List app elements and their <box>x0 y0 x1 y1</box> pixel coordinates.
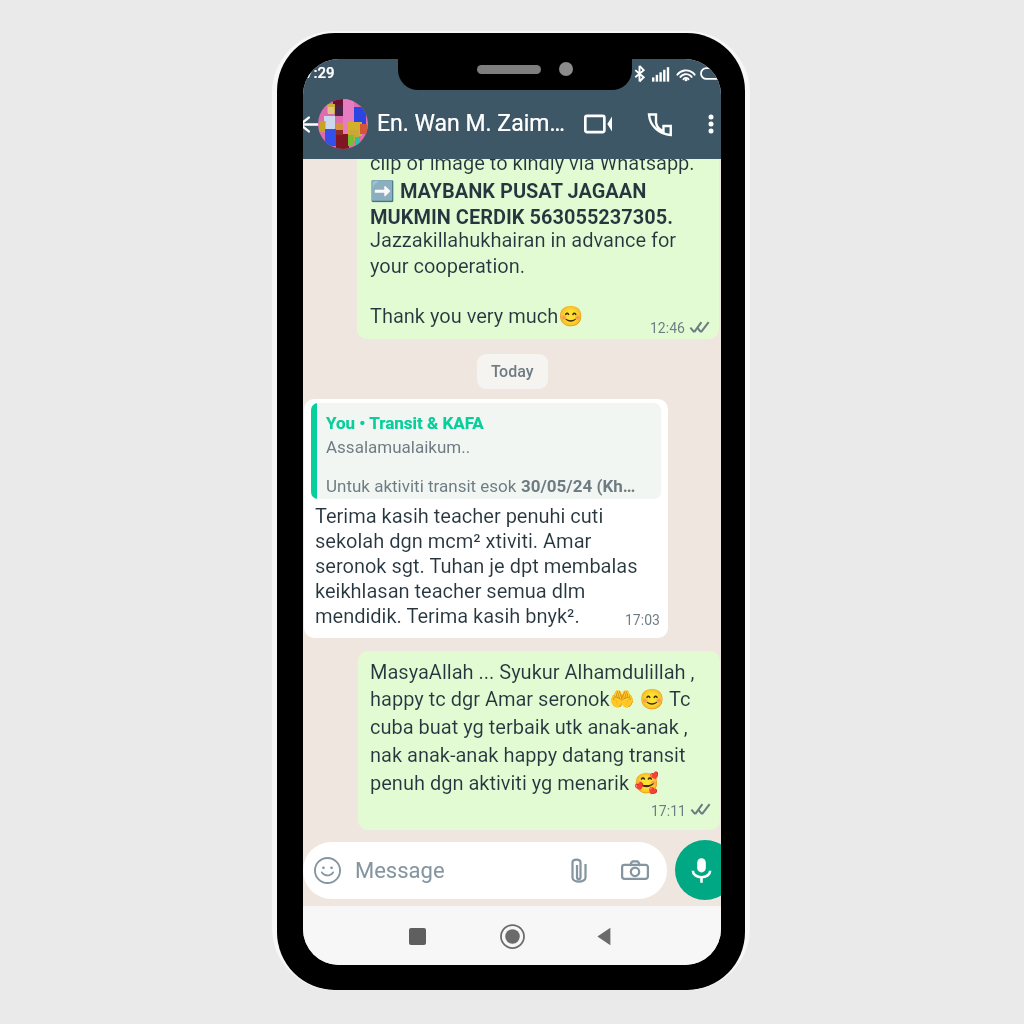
button[interactable]: Message <box>303 842 667 899</box>
staticText: Terima kasih teacher penuhi cuti sekolah… <box>315 504 660 628</box>
button[interactable]: Voice message <box>675 840 721 900</box>
staticText: MasyaAllah ... Syukur Alhamdulillah , ha… <box>370 660 710 795</box>
staticText: 12:46 <box>650 320 685 336</box>
staticText: 30/05/24 (Kh… <box>521 476 636 496</box>
staticText: Untuk aktiviti transit esok <box>326 476 521 496</box>
button[interactable] <box>318 99 368 149</box>
button[interactable]: Recents <box>394 913 440 959</box>
button[interactable]: Home <box>489 913 535 959</box>
staticText: ➡️ MAYBANK PUSAT JAGAAN MUKMIN CERDIK 56… <box>370 179 709 228</box>
button[interactable]: Video call <box>578 104 618 144</box>
staticText: Jazzakillahukhairan in advance for your … <box>370 228 709 277</box>
button[interactable]: More options <box>694 107 721 141</box>
staticText: Thank you very much😊 <box>370 304 584 327</box>
staticText: En. Wan M. Zaim… <box>377 110 577 137</box>
staticText: 17:11 <box>651 803 686 819</box>
staticText: clip of image to kindly via Whatsapp. <box>370 159 695 174</box>
staticText: Assalamualaikum.. <box>326 437 471 457</box>
staticText: 17:03 <box>625 612 660 628</box>
button[interactable]: Today <box>477 354 548 389</box>
staticText: 7:29 <box>305 64 335 82</box>
button[interactable]: Voice call <box>640 105 678 143</box>
staticText: You • Transit & KAFA <box>326 413 484 433</box>
button[interactable]: Back <box>303 107 326 141</box>
button[interactable]: Back <box>581 913 627 959</box>
staticText: Message <box>355 858 445 884</box>
staticText: Today <box>491 362 534 381</box>
